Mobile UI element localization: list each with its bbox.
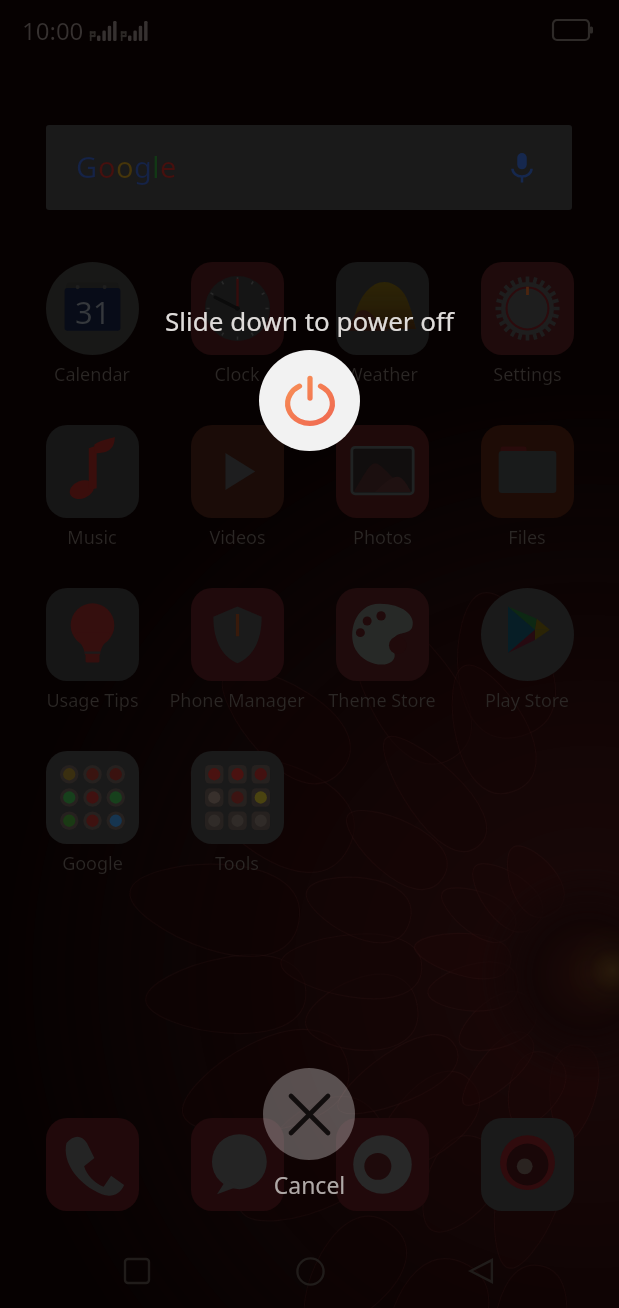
button[interactable]: Recents [102, 1236, 172, 1306]
button[interactable]: Power off [259, 350, 360, 451]
button[interactable]: 31 [2, 262, 182, 387]
staticText: G [76, 147, 98, 186]
button[interactable]: Files [437, 425, 617, 550]
staticText: Clock [214, 362, 260, 387]
button[interactable]: Play Store [437, 588, 617, 713]
button[interactable]: Music [2, 425, 182, 550]
staticText: Tools [215, 851, 259, 876]
staticText: l [152, 147, 160, 186]
button[interactable]: Clock [147, 262, 327, 387]
button[interactable]: Home [275, 1236, 345, 1306]
button[interactable]: Phone [46, 1118, 139, 1211]
staticText: Play Store [485, 688, 569, 713]
button[interactable]: Tools [147, 751, 327, 876]
button[interactable]: Google [2, 751, 182, 876]
button[interactable]: G [46, 125, 572, 210]
staticText: Slide down to power off [0, 303, 619, 338]
staticText: Settings [493, 362, 562, 387]
staticText: Google [62, 851, 123, 876]
button[interactable]: Settings [437, 262, 617, 387]
button[interactable]: Cancel [263, 1068, 355, 1160]
staticText: Usage Tips [46, 688, 139, 713]
staticText: Files [508, 525, 546, 550]
staticText: 10:00 [22, 14, 84, 47]
button[interactable]: Browser [481, 1118, 574, 1211]
button[interactable]: Voice search [502, 148, 542, 188]
button[interactable]: Back [447, 1236, 517, 1306]
staticText: Calendar [54, 362, 130, 387]
button[interactable]: Usage Tips [2, 588, 182, 713]
staticText: o [98, 147, 116, 186]
staticText: Videos [209, 525, 266, 550]
button[interactable]: Photos [292, 425, 472, 550]
staticText: Weather [346, 362, 418, 387]
staticText: Music [67, 525, 117, 550]
staticText: Photos [353, 525, 412, 550]
staticText: Phone Manager [169, 688, 305, 713]
staticText: Theme Store [328, 688, 436, 713]
staticText: Cancel [0, 1169, 619, 1200]
staticText: o [116, 147, 134, 186]
button[interactable]: Videos [147, 425, 327, 550]
button[interactable]: Weather [292, 262, 472, 387]
button[interactable]: Camera [336, 1118, 429, 1211]
staticText: g [134, 147, 152, 186]
button[interactable]: Phone Manager [147, 588, 327, 713]
button[interactable]: Theme Store [292, 588, 472, 713]
button[interactable]: Messages [191, 1118, 284, 1211]
staticText: 31 [75, 291, 111, 333]
staticText: e [160, 147, 177, 186]
